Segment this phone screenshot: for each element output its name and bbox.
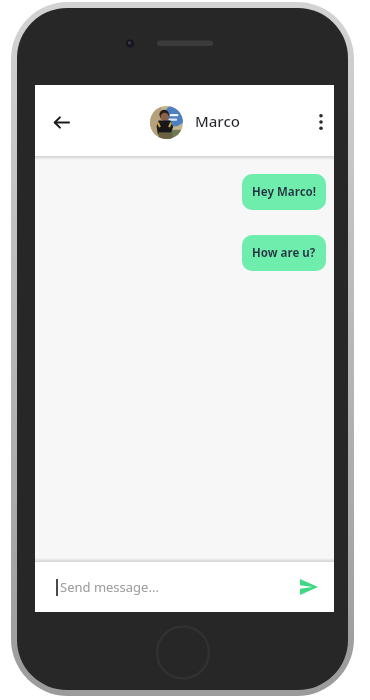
button[interactable] <box>301 102 341 142</box>
staticText: Marco <box>195 111 240 131</box>
button[interactable]: Hey Marco! <box>242 174 326 210</box>
button[interactable]: How are u? <box>242 235 326 271</box>
button[interactable] <box>296 574 322 600</box>
staticText: Hey Marco! <box>252 184 316 200</box>
button[interactable] <box>41 102 81 142</box>
button[interactable]: Send message... <box>56 562 322 612</box>
button[interactable] <box>150 106 183 139</box>
staticText: How are u? <box>252 245 316 261</box>
staticText: Send message... <box>60 578 159 596</box>
